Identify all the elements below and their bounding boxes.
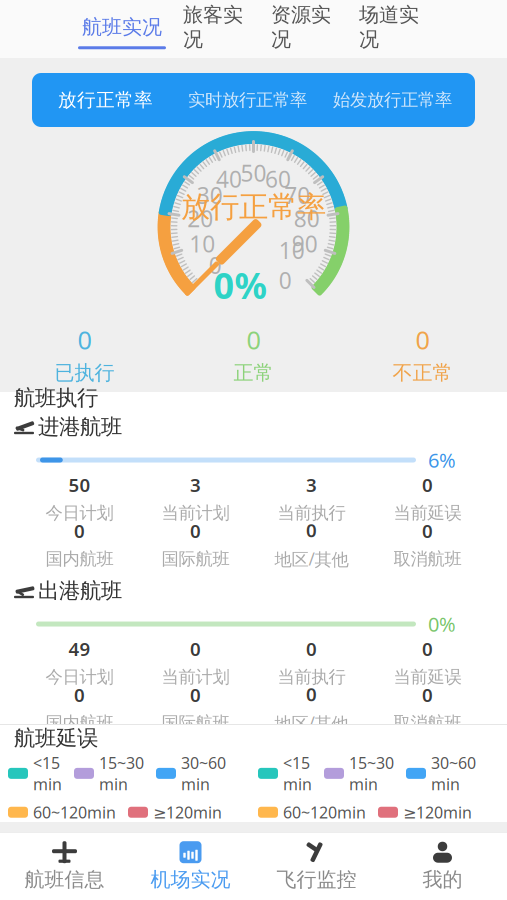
button[interactable]: 场道实况	[352, 2, 426, 61]
staticText: 0	[247, 158, 260, 188]
staticText: 50	[68, 472, 90, 497]
button[interactable]: 0	[0, 323, 169, 385]
staticText: 航班执行	[14, 385, 98, 411]
staticText: 航班延误	[14, 725, 98, 751]
staticText: 20	[240, 158, 266, 188]
staticText: 0	[74, 518, 85, 543]
staticText: 30~60min	[431, 752, 476, 795]
button[interactable]: 始发放行正常率	[328, 81, 457, 119]
button[interactable]: 机场实况	[127, 832, 253, 900]
staticText: 0	[415, 323, 429, 356]
staticText: 30~60min	[181, 752, 226, 795]
staticText: 飞行监控	[276, 867, 356, 892]
staticText: 80	[240, 158, 266, 188]
staticText: 资源实况	[271, 2, 331, 51]
button[interactable]: 飞行监控	[253, 832, 379, 900]
staticText: 15~30min	[349, 752, 394, 795]
staticText: 3	[306, 472, 317, 497]
staticText: 国际航班	[161, 548, 229, 569]
staticText: 0	[190, 636, 201, 661]
staticText: 0	[306, 682, 317, 706]
staticText: <15min	[33, 752, 62, 795]
staticText: 今日计划	[45, 666, 113, 687]
staticText: 0	[77, 323, 91, 356]
staticText: 国内航班	[45, 712, 113, 733]
staticText: 进港航班	[38, 414, 122, 440]
staticText: 0	[190, 682, 201, 707]
staticText: 15~30min	[99, 752, 144, 795]
staticText: 当前计划	[161, 502, 229, 523]
button[interactable]: 航班信息	[1, 832, 127, 900]
staticText: 50	[240, 158, 266, 188]
staticText: 70	[240, 158, 266, 188]
staticText: 当前执行	[277, 502, 345, 523]
staticText: 30	[240, 158, 266, 188]
staticText: 0	[422, 472, 433, 497]
staticText: <15min	[283, 752, 312, 795]
staticText: 取消航班	[393, 712, 461, 733]
staticText: 国际航班	[161, 712, 229, 733]
staticText: 取消航班	[393, 548, 461, 569]
button[interactable]: 我的	[379, 832, 505, 900]
staticText: 航班实况	[82, 15, 162, 39]
button[interactable]: 航班实况	[76, 15, 168, 49]
staticText: 国内航班	[45, 548, 113, 569]
staticText: 6%	[428, 447, 456, 473]
button[interactable]: 放行正常率	[50, 80, 161, 119]
button[interactable]: 资源实况	[264, 2, 338, 61]
staticText: 40	[240, 158, 266, 188]
staticText: 100	[240, 143, 266, 203]
button[interactable]: 0	[169, 323, 338, 385]
staticText: 已执行	[54, 360, 114, 385]
staticText: 实时放行正常率	[188, 89, 307, 111]
staticText: 0	[422, 518, 433, 543]
staticText: 我的	[422, 867, 462, 892]
staticText: 0	[74, 682, 85, 707]
staticText: 3	[190, 472, 201, 497]
staticText: 60	[240, 158, 266, 188]
staticText: 0%	[428, 611, 456, 637]
staticText: 0	[422, 636, 433, 661]
staticText: 0	[246, 323, 260, 356]
staticText: 始发放行正常率	[333, 89, 452, 111]
button[interactable]: 旅客实况	[176, 2, 250, 61]
staticText: 49	[68, 636, 90, 661]
staticText: 地区/其他	[274, 547, 348, 570]
staticText: 航班信息	[24, 867, 104, 892]
staticText: 0%	[213, 261, 266, 309]
staticText: 0	[190, 518, 201, 543]
button[interactable]: 0	[338, 323, 507, 385]
staticText: ≥120min	[153, 802, 222, 823]
staticText: 当前执行	[277, 666, 345, 687]
button[interactable]: 实时放行正常率	[183, 81, 312, 119]
staticText: 0	[306, 636, 317, 661]
staticText: 机场实况	[150, 867, 230, 892]
staticText: 0	[422, 682, 433, 707]
staticText: 场道实况	[359, 2, 419, 51]
staticText: 不正常	[392, 360, 452, 385]
staticText: 放行正常率	[58, 88, 153, 111]
staticText: 90	[240, 158, 266, 188]
staticText: 60~120min	[283, 802, 366, 823]
staticText: 今日计划	[45, 502, 113, 523]
staticText: ≥120min	[403, 802, 472, 823]
staticText: 旅客实况	[183, 2, 243, 51]
staticText: 出港航班	[38, 578, 122, 604]
staticText: 0	[306, 518, 317, 542]
staticText: 10	[240, 158, 266, 188]
staticText: 放行正常率	[181, 189, 326, 225]
staticText: 当前延误	[393, 502, 461, 523]
staticText: 地区/其他	[274, 711, 348, 734]
staticText: 60~120min	[33, 802, 116, 823]
staticText: 当前延误	[393, 666, 461, 687]
staticText: 当前计划	[161, 666, 229, 687]
staticText: 正常	[233, 360, 273, 385]
